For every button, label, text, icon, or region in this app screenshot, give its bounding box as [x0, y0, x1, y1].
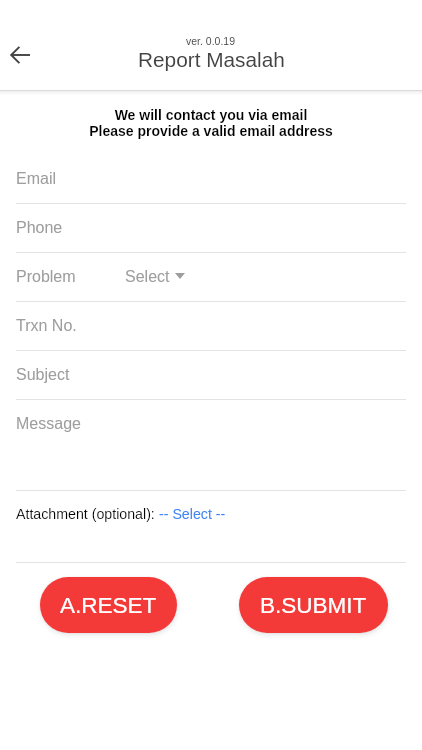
staticText: -- Select -- [159, 506, 226, 522]
staticText: ver. 0.0.19 [186, 35, 236, 47]
staticText: Report Masalah [138, 48, 285, 71]
staticText: Message [16, 415, 81, 433]
staticText: B.SUBMIT [260, 593, 367, 618]
staticText: A.RESET [60, 593, 157, 618]
staticText: Phone [16, 219, 63, 237]
staticText: Please provide a valid email address [0, 123, 422, 139]
staticText: Problem [16, 268, 76, 286]
staticText: We will contact you via email [0, 107, 422, 123]
staticText: Attachment (optional): [16, 506, 159, 522]
button[interactable]: Select [125, 268, 185, 286]
staticText: Trxn No. [16, 317, 77, 335]
button[interactable]: B.SUBMIT [239, 577, 388, 633]
staticText: Email [16, 170, 57, 188]
button[interactable]: Back [0, 33, 42, 77]
button[interactable]: -- Select -- [159, 506, 226, 522]
staticText: Select [125, 268, 170, 286]
button[interactable]: A.RESET [40, 577, 177, 633]
staticText: Subject [16, 366, 70, 384]
